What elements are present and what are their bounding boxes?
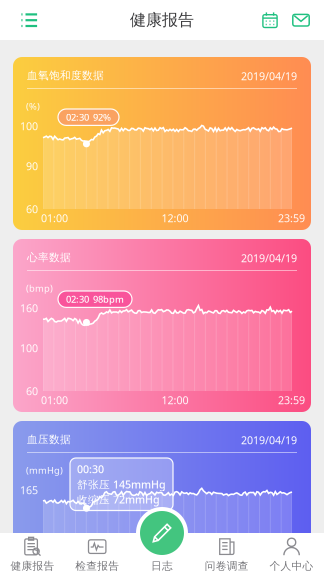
staticText: 145 <box>20 536 38 550</box>
staticText: 23:59 <box>278 211 305 225</box>
staticText: 100 <box>20 341 38 355</box>
button[interactable]: Menu <box>9 0 49 40</box>
staticText: 90 <box>26 159 38 173</box>
staticText: 02:30 92% <box>66 111 111 123</box>
button[interactable]: New log entry <box>136 507 188 559</box>
staticText: 01:00 <box>41 211 68 225</box>
staticText: 心率数据 <box>27 251 71 264</box>
staticText: 2019/04/19 <box>241 251 297 265</box>
staticText: 165 <box>20 483 38 497</box>
staticText: (%) <box>26 100 40 112</box>
button[interactable]: 健康报告 <box>0 533 65 576</box>
staticText: 12:00 <box>161 393 188 407</box>
button[interactable]: 个人中心 <box>259 533 324 576</box>
staticText: 血氧饱和度数据 <box>27 69 104 82</box>
button[interactable]: 日志 <box>130 533 194 576</box>
staticText: 血压数据 <box>27 433 71 446</box>
staticText: 00:30 <box>77 462 104 476</box>
staticText: 问卷调查 <box>205 559 249 572</box>
staticText: 02:30 98bpm <box>66 293 124 305</box>
staticText: 100 <box>20 119 38 133</box>
staticText: 12:00 <box>161 211 188 225</box>
staticText: 60 <box>26 384 38 398</box>
staticText: 个人中心 <box>270 559 314 572</box>
staticText: 健康报告 <box>130 10 194 30</box>
staticText: 160 <box>20 301 38 315</box>
staticText: (mmHg) <box>26 464 63 476</box>
staticText: 日志 <box>151 559 173 572</box>
staticText: 60 <box>26 202 38 216</box>
button[interactable]: 问卷调查 <box>194 533 259 576</box>
button[interactable]: 检查报告 <box>65 533 130 576</box>
button[interactable]: Messages <box>287 0 315 40</box>
staticText: 健康报告 <box>10 559 54 572</box>
staticText: 01:00 <box>41 393 68 407</box>
staticText: 2019/04/19 <box>241 69 297 83</box>
staticText: 舒张压 145mmHg <box>77 477 166 491</box>
button[interactable]: Calendar <box>256 0 284 40</box>
staticText: 收缩压 72mmHg <box>77 492 160 506</box>
staticText: 23:59 <box>278 393 305 407</box>
staticText: (bmp) <box>26 282 53 294</box>
staticText: 2019/04/19 <box>241 433 297 447</box>
staticText: 检查报告 <box>75 559 119 572</box>
